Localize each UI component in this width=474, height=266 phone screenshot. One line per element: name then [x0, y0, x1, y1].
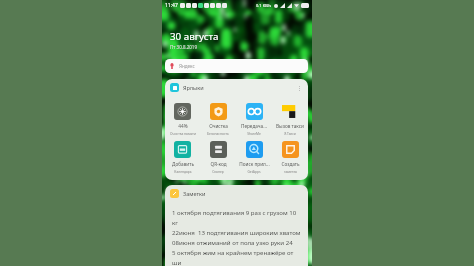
- staticText: Передача...: [241, 123, 267, 129]
- button[interactable]: Поиск прил...: [236, 141, 272, 173]
- staticText: 30 августа: [170, 30, 219, 43]
- staticText: Календарь: [174, 169, 192, 173]
- staticText: 44%: [178, 123, 188, 129]
- staticText: Вызов такси: [276, 123, 304, 129]
- staticText: заметка: [284, 169, 297, 173]
- staticText: Очистка: [209, 123, 228, 129]
- staticText: Очистка памяти: [170, 131, 196, 135]
- staticText: Ярлыки: [183, 84, 204, 91]
- button[interactable]: Вызов такси: [272, 103, 308, 135]
- staticText: кг: [172, 218, 178, 226]
- staticText: QR-код: [210, 161, 227, 167]
- staticText: Безопасность: [207, 131, 229, 135]
- staticText: ши: [172, 258, 182, 266]
- button[interactable]: Передача...: [236, 103, 272, 135]
- button[interactable]: Добавить: [165, 141, 200, 173]
- button[interactable]: Заметки: [165, 185, 308, 266]
- button[interactable]: More options: [295, 84, 303, 92]
- button[interactable]: Создать: [272, 141, 308, 173]
- staticText: 11:47: [165, 2, 178, 9]
- staticText: Добавить: [172, 161, 194, 167]
- staticText: Пт 30.8.2019: [170, 44, 197, 50]
- staticText: Яндекс: [179, 63, 195, 69]
- staticText: Поиск прил...: [239, 161, 270, 167]
- staticText: Заметки: [183, 190, 206, 197]
- button[interactable]: QR-код: [200, 141, 236, 173]
- staticText: 1 октября подтягивания 9 раз с грузом 10: [172, 208, 297, 216]
- staticText: 0.1 KB/s: [256, 3, 272, 8]
- button[interactable]: 44%: [165, 103, 200, 135]
- staticText: ShareMe: [247, 131, 261, 135]
- staticText: GetApps: [247, 169, 261, 173]
- staticText: Создать: [281, 161, 300, 167]
- button[interactable]: Яндекс: [165, 59, 308, 73]
- staticText: Сканер: [212, 169, 224, 173]
- staticText: 5 октября жим на крайнем тренажёре от: [172, 248, 294, 256]
- staticText: 08июня отжиманий от пола узко руки 24: [172, 238, 293, 246]
- button[interactable]: Очистка: [200, 103, 236, 135]
- staticText: Я.Такси: [284, 131, 296, 135]
- staticText: 22июня 13 подтягивания широким хватом: [172, 228, 301, 236]
